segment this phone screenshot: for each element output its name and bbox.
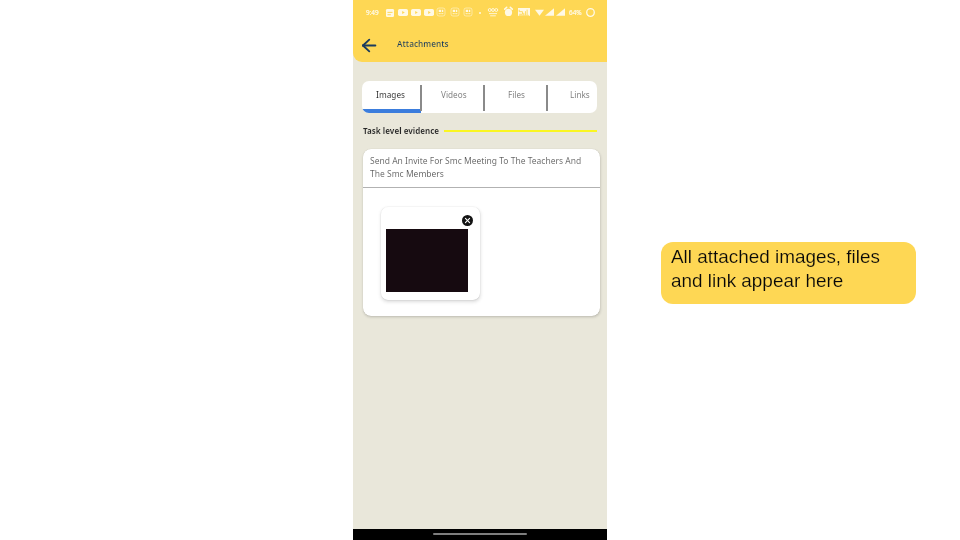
staticText: All attached images, files and link appe… — [671, 246, 880, 291]
button[interactable]: Files — [484, 81, 547, 113]
staticText: Videos — [441, 89, 467, 100]
staticText: Links — [570, 89, 590, 100]
staticText: Images — [376, 89, 406, 100]
staticText: 9:49 — [366, 8, 379, 17]
staticText: Task level evidence — [363, 125, 440, 136]
button[interactable]: Back — [356, 33, 381, 58]
button[interactable]: Videos — [421, 81, 484, 113]
button[interactable]: All attached images, files and link appe… — [661, 242, 916, 304]
staticText: 64% — [569, 8, 582, 17]
staticText: Attachments — [397, 38, 449, 49]
staticText: Send An Invite For Smc Meeting To The Te… — [370, 155, 584, 180]
button[interactable]: Remove attachment — [462, 215, 473, 226]
button[interactable]: Send An Invite For Smc Meeting To The Te… — [363, 149, 600, 316]
button[interactable]: Links — [547, 81, 597, 113]
button[interactable]: Images — [362, 81, 421, 113]
staticText: Files — [508, 89, 526, 100]
